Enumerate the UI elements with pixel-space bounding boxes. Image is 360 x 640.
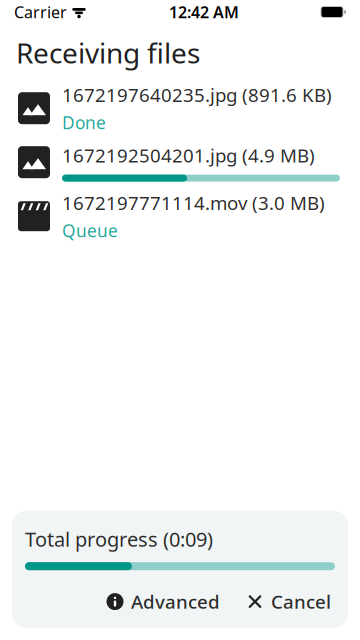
staticText: Cancel bbox=[271, 589, 331, 614]
button[interactable]: 1672197640235.jpg (891.6 KB) bbox=[0, 81, 360, 135]
staticText: Queue bbox=[62, 219, 118, 242]
staticText: 12:42 AM bbox=[169, 1, 239, 23]
staticText: Done bbox=[62, 111, 106, 134]
staticText: Advanced bbox=[131, 589, 220, 614]
staticText: 1672197771114.mov (3.0 MB) bbox=[62, 190, 325, 215]
staticText: 1672197640235.jpg (891.6 KB) bbox=[62, 82, 332, 107]
staticText: 1672192504201.jpg (4.9 MB) bbox=[62, 143, 315, 168]
button[interactable]: 1672192504201.jpg (4.9 MB) bbox=[0, 135, 360, 189]
staticText: Total progress (0:09) bbox=[25, 526, 213, 552]
staticText: Receiving files bbox=[16, 34, 200, 71]
staticText: Carrier bbox=[14, 1, 67, 23]
button[interactable]: Cancel bbox=[242, 586, 335, 617]
button[interactable]: Advanced bbox=[102, 586, 224, 617]
button[interactable]: 1672197771114.mov (3.0 MB) bbox=[0, 189, 360, 243]
